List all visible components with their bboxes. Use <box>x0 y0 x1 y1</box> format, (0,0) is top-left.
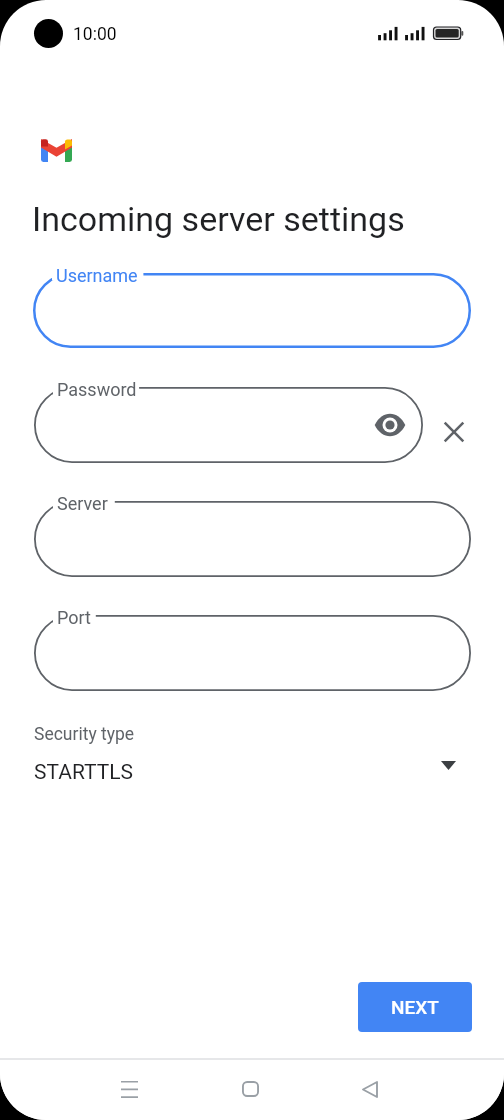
button[interactable]: Port <box>34 615 471 691</box>
button[interactable]: Recent apps <box>105 1065 153 1113</box>
button[interactable]: Server <box>34 501 471 577</box>
button[interactable]: Back <box>346 1065 394 1113</box>
button[interactable]: Clear <box>432 410 476 454</box>
button[interactable]: Password <box>34 387 423 463</box>
button[interactable]: NEXT <box>358 982 472 1032</box>
staticText: Password <box>57 379 137 400</box>
button[interactable]: Username <box>33 273 471 348</box>
button[interactable]: Show password <box>368 403 412 447</box>
button[interactable]: Security type <box>0 715 504 805</box>
staticText: Port <box>57 607 91 628</box>
staticText: Username <box>56 265 138 286</box>
staticText: Incoming server settings <box>32 199 405 239</box>
staticText: NEXT <box>391 996 439 1018</box>
staticText: 10:00 <box>73 24 117 45</box>
staticText: STARTTLS <box>34 760 134 785</box>
staticText: Server <box>57 493 108 514</box>
staticText: Security type <box>34 724 135 745</box>
button[interactable]: Home <box>226 1065 274 1113</box>
